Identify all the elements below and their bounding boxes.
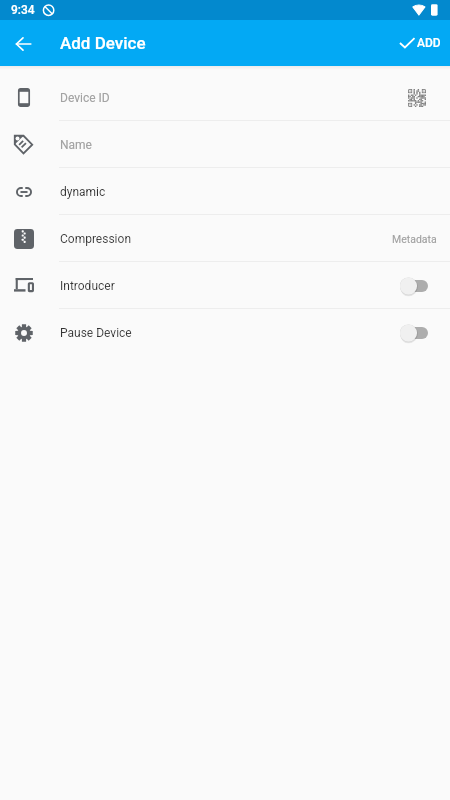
button[interactable]: Toggle — [400, 273, 436, 299]
button[interactable]: dynamic — [0, 168, 450, 215]
button[interactable]: Introducer — [0, 262, 450, 309]
button[interactable]: Name — [0, 121, 450, 168]
staticText: Introducer — [60, 279, 115, 293]
button[interactable]: Navigate up — [7, 27, 40, 60]
staticText: Name — [60, 138, 92, 152]
button[interactable]: Compression — [0, 215, 450, 262]
staticText: Device ID — [60, 91, 110, 105]
button[interactable]: Scan QR code — [405, 86, 429, 110]
button[interactable]: ADD — [393, 28, 447, 58]
button[interactable]: Pause Device — [0, 309, 450, 356]
button[interactable]: Toggle — [400, 320, 436, 346]
staticText: Metadata — [392, 233, 437, 245]
staticText: dynamic — [60, 185, 106, 199]
staticText: Add Device — [60, 33, 146, 53]
staticText: ADD — [417, 36, 441, 50]
button[interactable]: Device ID — [0, 74, 450, 121]
staticText: Compression — [60, 232, 132, 246]
staticText: 9:34 — [11, 3, 35, 17]
staticText: Pause Device — [60, 326, 132, 340]
